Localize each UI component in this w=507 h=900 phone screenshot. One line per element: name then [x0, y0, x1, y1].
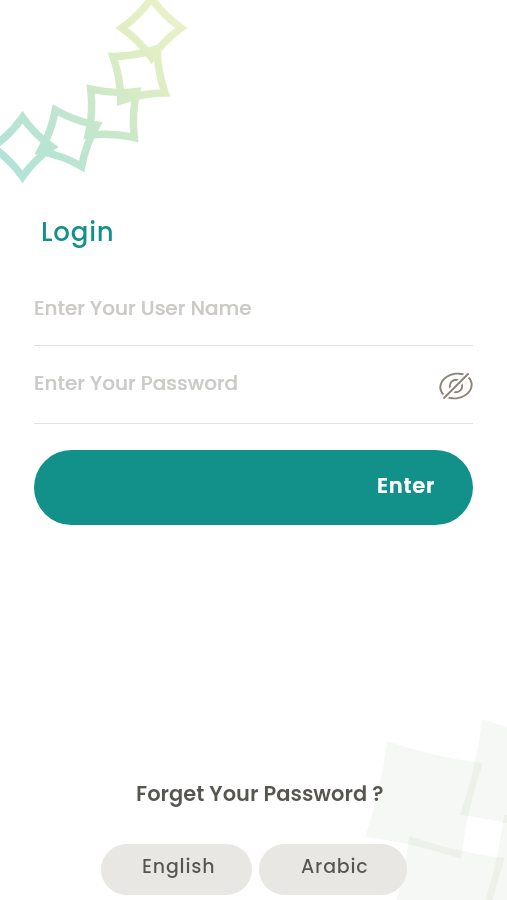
staticText: English — [142, 853, 216, 880]
button[interactable]: Enter — [34, 450, 473, 525]
button[interactable]: English — [101, 844, 252, 895]
button[interactable]: Forget Your Password ? — [126, 775, 394, 812]
button[interactable]: Show password — [434, 364, 478, 408]
button[interactable]: Arabic — [259, 844, 407, 895]
staticText: Arabic — [301, 853, 369, 880]
staticText: Enter — [377, 471, 436, 500]
staticText: Login — [41, 214, 115, 250]
staticText: Forget Your Password ? — [136, 779, 384, 808]
button[interactable]: Enter Your User Name — [34, 291, 473, 345]
staticText: Enter Your User Name — [34, 294, 252, 322]
button[interactable]: Enter Your Password — [34, 369, 239, 397]
